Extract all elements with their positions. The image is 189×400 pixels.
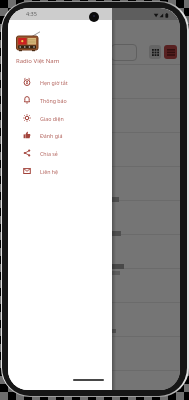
staticText: Radio Việt Nam — [16, 57, 60, 65]
button[interactable] — [164, 45, 177, 59]
button[interactable]: Giao diện — [8, 112, 111, 124]
staticText: Giao diện — [40, 115, 64, 122]
button[interactable]: Chia sẻ — [8, 147, 111, 159]
staticText: 4:35 — [26, 10, 37, 17]
button[interactable]: Thông báo — [8, 94, 111, 106]
staticText: Chia sẻ — [40, 150, 58, 157]
button[interactable] — [149, 45, 161, 59]
staticText: Hẹn giờ tắt — [40, 79, 68, 86]
staticText: Đánh giá — [40, 132, 63, 139]
button[interactable]: Đánh giá — [8, 129, 111, 141]
button[interactable]: Hẹn giờ tắt — [8, 76, 111, 88]
button[interactable]: Liên hệ — [8, 165, 111, 177]
staticText: Liên hệ — [40, 168, 59, 175]
staticText: Thông báo — [40, 97, 67, 104]
